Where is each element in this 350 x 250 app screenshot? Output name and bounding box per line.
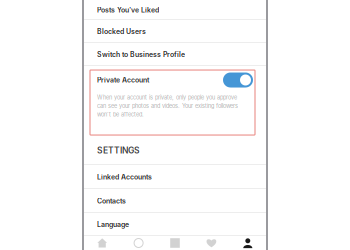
button[interactable]: Language [84, 213, 266, 236]
staticText: Contacts [97, 197, 126, 205]
button[interactable]: Activity [193, 236, 230, 250]
button[interactable]: Home [84, 236, 120, 250]
button[interactable]: Contacts [84, 189, 266, 213]
staticText: Posts You've Liked [97, 6, 159, 14]
button[interactable]: Switch to Business Profile [84, 43, 266, 66]
staticText: Switch to Business Profile [97, 50, 185, 59]
staticText: Private Account [97, 76, 149, 84]
button[interactable]: Search [120, 236, 157, 250]
staticText: When your account is private, only peopl… [97, 94, 238, 118]
button[interactable]: Linked Accounts [84, 165, 266, 189]
button[interactable]: New Post [157, 236, 193, 250]
staticText: Blocked Users [97, 27, 146, 36]
staticText: Linked Accounts [97, 173, 152, 181]
staticText: Language [97, 220, 129, 229]
button[interactable]: Private Account [84, 66, 266, 94]
button[interactable]: Blocked Users [84, 20, 266, 43]
button[interactable]: Profile [230, 236, 266, 250]
button[interactable]: Posts You've Liked [84, 0, 266, 20]
staticText: SETTINGS [97, 145, 140, 156]
